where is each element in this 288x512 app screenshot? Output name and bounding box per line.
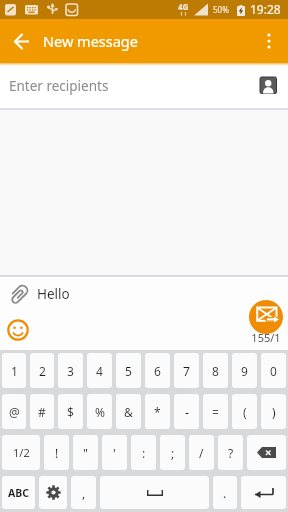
staticText: ABC: [8, 486, 29, 500]
button[interactable]: 0: [261, 353, 286, 388]
staticText: ': [113, 445, 116, 461]
button[interactable]: (: [232, 394, 257, 429]
staticText: /: [199, 445, 204, 461]
staticText: ,: [82, 485, 86, 501]
button[interactable]: 1/2: [2, 435, 40, 470]
button[interactable]: 6: [145, 353, 170, 388]
button[interactable]: $: [58, 394, 83, 429]
button[interactable]: @: [2, 394, 26, 429]
staticText: 8: [212, 363, 219, 379]
button[interactable]: [247, 435, 286, 470]
staticText: 155/1: [243, 330, 288, 345]
button[interactable]: :: [131, 435, 156, 470]
staticText: 4: [96, 363, 103, 379]
button[interactable]: -: [174, 394, 199, 429]
button[interactable]: %: [87, 394, 112, 429]
staticText: =: [212, 404, 219, 420]
button[interactable]: &: [116, 394, 141, 429]
button[interactable]: ): [261, 394, 286, 429]
button[interactable]: *: [145, 394, 170, 429]
staticText: 19:28: [250, 1, 281, 17]
staticText: #: [38, 404, 46, 420]
staticText: *: [154, 404, 161, 420]
staticText: Hello: [37, 285, 70, 303]
button[interactable]: [7, 283, 30, 306]
button[interactable]: ": [73, 435, 98, 470]
staticText: $: [67, 404, 74, 420]
button[interactable]: [250, 19, 288, 63]
staticText: 6: [154, 363, 161, 379]
button[interactable]: 3: [58, 353, 83, 388]
staticText: 1: [11, 363, 18, 379]
staticText: ): [272, 404, 276, 420]
button[interactable]: 5: [116, 353, 141, 388]
button[interactable]: ?: [218, 435, 243, 470]
staticText: 5: [125, 363, 132, 379]
button[interactable]: !: [44, 435, 69, 470]
button[interactable]: 9: [232, 353, 257, 388]
staticText: .: [223, 485, 227, 501]
staticText: 0: [270, 363, 277, 379]
button[interactable]: ;: [160, 435, 185, 470]
button[interactable]: =: [203, 394, 228, 429]
button[interactable]: /: [189, 435, 214, 470]
staticText: 4G: [178, 1, 189, 12]
staticText: :: [142, 445, 146, 461]
staticText: 3: [67, 363, 74, 379]
staticText: 50%: [213, 4, 229, 15]
staticText: ": [83, 445, 88, 461]
staticText: 1/2: [13, 445, 30, 460]
button[interactable]: [241, 476, 286, 509]
button[interactable]: 8: [203, 353, 228, 388]
button[interactable]: [260, 77, 277, 94]
staticText: 9: [241, 363, 248, 379]
staticText: (: [243, 404, 247, 420]
button[interactable]: [7, 319, 29, 341]
button[interactable]: ABC: [2, 476, 35, 509]
staticText: @: [9, 404, 20, 420]
staticText: -: [185, 404, 189, 420]
staticText: 7: [183, 363, 190, 379]
button[interactable]: 4: [87, 353, 112, 388]
button[interactable]: #: [30, 394, 54, 429]
button[interactable]: 7: [174, 353, 199, 388]
button[interactable]: ': [102, 435, 127, 470]
button[interactable]: .: [213, 476, 237, 509]
button[interactable]: ,: [71, 476, 96, 509]
staticText: &: [124, 404, 133, 420]
button[interactable]: [39, 476, 67, 509]
button[interactable]: [0, 19, 44, 63]
staticText: ;: [171, 445, 175, 461]
staticText: 2: [39, 363, 46, 379]
button[interactable]: Enter recipients: [0, 63, 288, 108]
staticText: ?: [228, 445, 234, 461]
button[interactable]: [249, 300, 283, 334]
staticText: !: [55, 445, 59, 461]
staticText: New message: [43, 31, 138, 51]
button[interactable]: [100, 476, 209, 509]
staticText: %: [95, 404, 105, 420]
button[interactable]: 1: [2, 353, 26, 388]
button[interactable]: 2: [30, 353, 54, 388]
staticText: Enter recipients: [9, 77, 260, 95]
